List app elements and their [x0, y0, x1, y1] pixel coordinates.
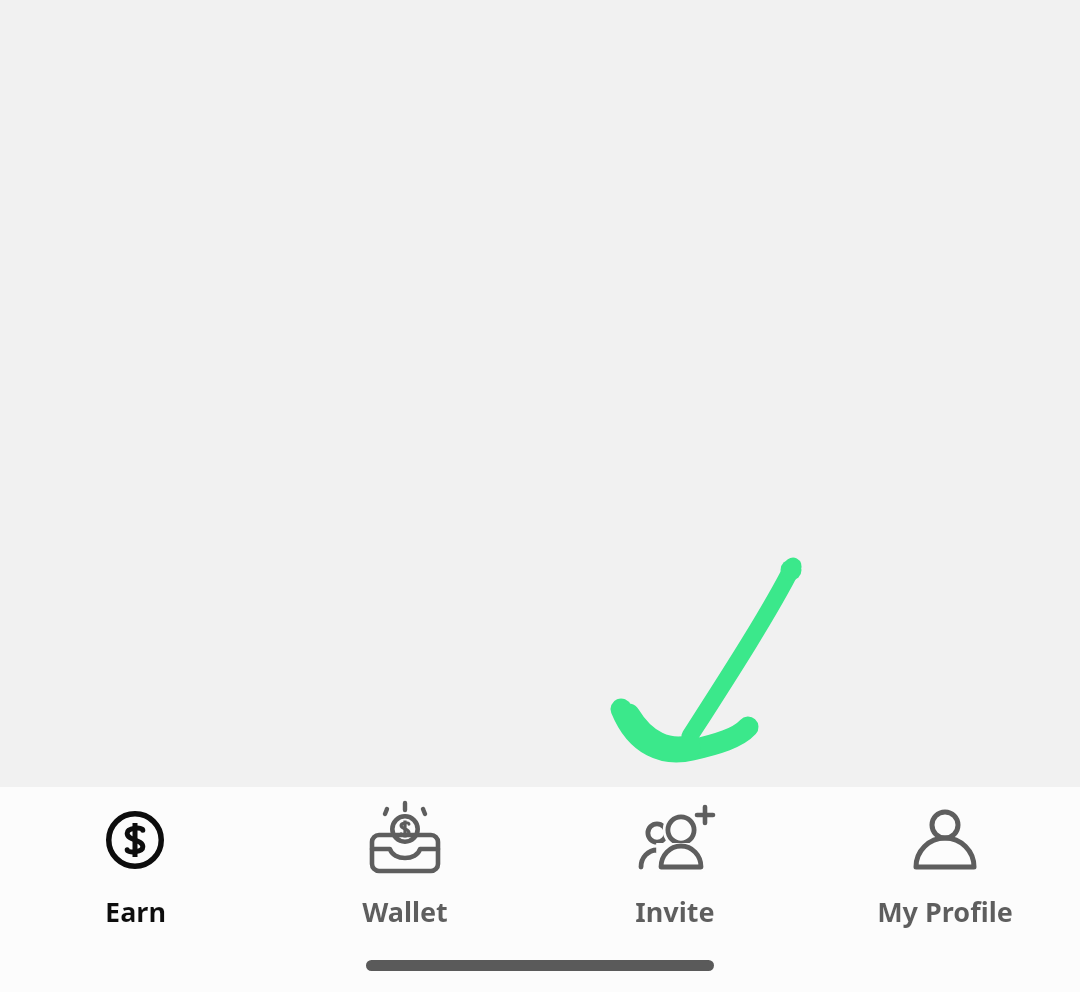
other: Invite — [636, 801, 714, 879]
staticText: Earn — [105, 893, 166, 930]
staticText: Invite — [635, 893, 715, 930]
button[interactable]: Invite — [540, 787, 810, 930]
other: Wallet — [366, 801, 444, 879]
other: Earn — [96, 801, 174, 879]
staticText: My Profile — [877, 893, 1013, 930]
button[interactable]: My Profile — [810, 787, 1080, 930]
button[interactable]: Earn — [0, 787, 270, 930]
other: My Profile — [906, 801, 984, 879]
staticText: Wallet — [362, 893, 448, 930]
button[interactable]: Wallet — [270, 787, 540, 930]
